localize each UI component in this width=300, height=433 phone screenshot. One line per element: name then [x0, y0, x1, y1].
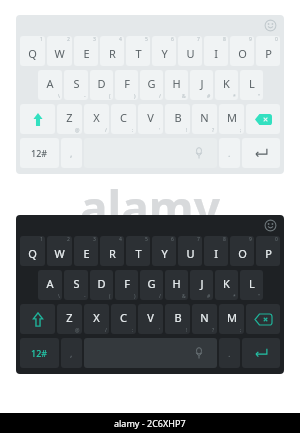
staticText: X — [93, 310, 100, 325]
button[interactable]: ) — [115, 270, 138, 300]
button[interactable]: # — [190, 270, 213, 300]
staticText: T — [135, 246, 142, 261]
staticText: ) — [134, 93, 136, 100]
staticText: P — [265, 246, 272, 261]
button[interactable]: 0 — [256, 236, 280, 266]
staticText: ' — [159, 127, 161, 134]
button[interactable]: 4 — [100, 236, 124, 266]
staticText: W — [54, 46, 65, 61]
button[interactable]: - — [64, 70, 88, 100]
button[interactable]: / — [84, 304, 109, 334]
button[interactable]: 12# — [20, 338, 59, 368]
staticText: R — [109, 246, 116, 261]
staticText: ( — [109, 293, 111, 300]
staticText: O — [238, 46, 247, 61]
button[interactable]: / — [140, 270, 163, 300]
button[interactable]: \ — [38, 70, 62, 100]
button[interactable]: ? — [192, 104, 217, 134]
button[interactable]: : — [111, 304, 136, 334]
staticText: 5 — [145, 236, 148, 243]
button[interactable]: ; — [219, 104, 244, 134]
button[interactable]: 9 — [230, 36, 254, 66]
staticText: 7 — [197, 236, 200, 243]
button[interactable]: # — [190, 70, 213, 100]
button[interactable]: / — [140, 70, 163, 100]
staticText: , — [70, 147, 73, 159]
button[interactable]: Shift — [20, 304, 55, 334]
staticText: E — [83, 46, 90, 61]
button[interactable]: ' — [138, 104, 163, 134]
button[interactable]: 1 — [20, 236, 45, 266]
button[interactable]: & — [165, 270, 188, 300]
staticText: ( — [109, 93, 111, 100]
staticText: * — [233, 93, 236, 100]
button[interactable]: Emoji — [263, 218, 278, 233]
button[interactable]: : — [111, 104, 136, 134]
button[interactable]: @ — [57, 104, 82, 134]
staticText: E — [83, 246, 90, 261]
button[interactable]: Enter — [242, 338, 280, 368]
button[interactable]: 8 — [204, 36, 228, 66]
button[interactable]: & — [165, 70, 188, 100]
staticText: ! — [186, 127, 188, 134]
button[interactable]: \ — [38, 270, 62, 300]
staticText: # — [207, 293, 211, 300]
button[interactable]: 5 — [126, 236, 150, 266]
button[interactable]: / — [84, 104, 109, 134]
button[interactable]: Backspace — [246, 104, 280, 134]
button[interactable]: ) — [115, 70, 138, 100]
button[interactable]: * — [215, 70, 238, 100]
staticText: / — [159, 93, 161, 100]
button[interactable]: 6 — [152, 236, 176, 266]
button[interactable]: " — [240, 270, 263, 300]
button[interactable]: ( — [90, 270, 113, 300]
button[interactable]: Space — [84, 338, 217, 368]
button[interactable]: 0 — [256, 36, 280, 66]
button[interactable]: 2 — [47, 36, 72, 66]
staticText: H — [172, 76, 181, 91]
staticText: I — [214, 46, 218, 61]
button[interactable]: 1 — [20, 36, 45, 66]
button[interactable]: 4 — [100, 36, 124, 66]
staticText: 2 — [67, 36, 70, 43]
staticText: , — [70, 347, 73, 359]
button[interactable]: ? — [192, 304, 217, 334]
staticText: & — [182, 93, 186, 100]
staticText: 12# — [31, 147, 48, 159]
staticText: 4 — [119, 236, 122, 243]
staticText: ; — [240, 327, 242, 334]
button[interactable]: * — [215, 270, 238, 300]
button[interactable]: 7 — [178, 236, 202, 266]
button[interactable]: 6 — [152, 36, 176, 66]
button[interactable]: Backspace — [246, 304, 280, 334]
button[interactable]: Emoji — [263, 18, 278, 33]
button[interactable]: 3 — [74, 236, 98, 266]
staticText: 5 — [145, 36, 148, 43]
button[interactable]: 7 — [178, 36, 202, 66]
staticText: " — [258, 293, 261, 300]
button[interactable]: ( — [90, 70, 113, 100]
staticText: Q — [28, 46, 37, 61]
button[interactable]: ' — [138, 304, 163, 334]
button[interactable]: 3 — [74, 36, 98, 66]
staticText: Y — [161, 46, 168, 61]
button[interactable]: Enter — [242, 138, 280, 168]
button[interactable]: ! — [165, 304, 190, 334]
button[interactable]: 12# — [20, 138, 59, 168]
button[interactable]: @ — [57, 304, 82, 334]
button[interactable]: 2 — [47, 236, 72, 266]
button[interactable]: ; — [219, 304, 244, 334]
button[interactable]: 5 — [126, 36, 150, 66]
button[interactable]: 9 — [230, 236, 254, 266]
button[interactable]: - — [64, 270, 88, 300]
button[interactable]: Shift — [20, 104, 55, 134]
button[interactable]: " — [240, 70, 263, 100]
button[interactable]: ! — [165, 104, 190, 134]
staticText: " — [258, 93, 261, 100]
button[interactable]: 8 — [204, 236, 228, 266]
